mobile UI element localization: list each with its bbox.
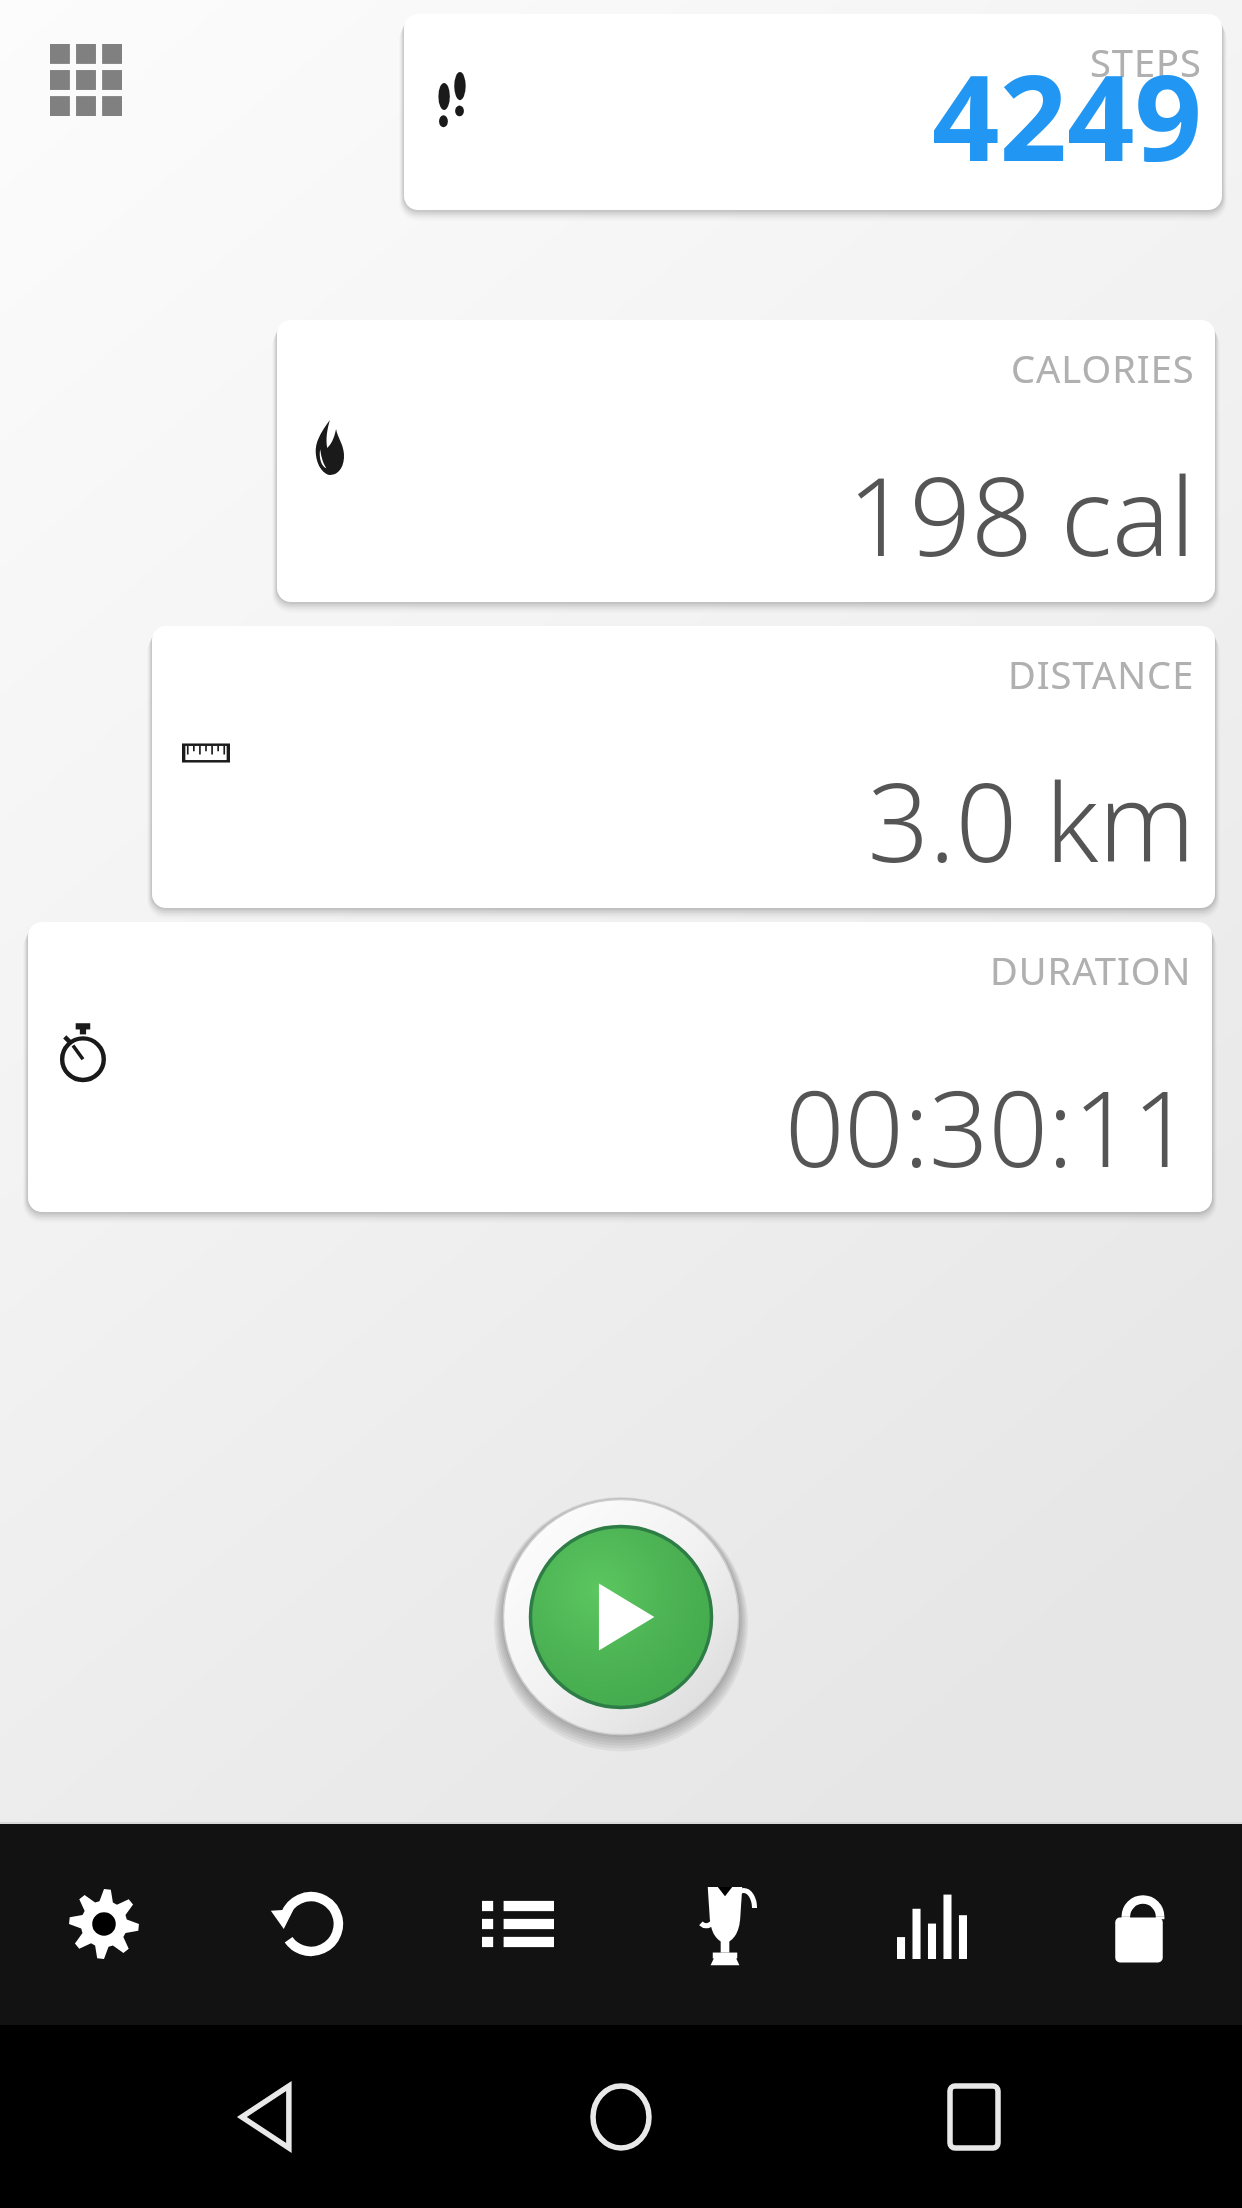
button[interactable]: CALORIES (277, 320, 1215, 602)
button[interactable]: DISTANCE (152, 626, 1215, 908)
button[interactable]: Reset (207, 1822, 414, 2025)
button[interactable]: Menu (40, 34, 132, 126)
button[interactable]: DURATION (28, 922, 1212, 1212)
staticText: 198 cal (847, 441, 1195, 588)
button[interactable]: Back (183, 2025, 353, 2208)
button[interactable]: Home (536, 2025, 706, 2208)
staticText: DISTANCE (1008, 648, 1195, 700)
staticText: DURATION (990, 944, 1192, 996)
staticText: STEPS (1090, 36, 1202, 88)
button[interactable]: STEPS (404, 14, 1222, 210)
button[interactable]: Start (498, 1494, 744, 1740)
button[interactable]: Statistics (828, 1822, 1035, 2025)
staticText: 4249 (932, 35, 1202, 196)
button[interactable]: Recent apps (889, 2025, 1059, 2208)
button[interactable]: Settings (0, 1822, 207, 2025)
button[interactable]: Achievements (621, 1822, 828, 2025)
staticText: 00:30:11 (784, 1056, 1192, 1198)
staticText: 3.0 km (867, 747, 1195, 894)
button[interactable]: Lock (1035, 1822, 1242, 2025)
staticText: CALORIES (1011, 342, 1195, 394)
button[interactable]: History list (414, 1822, 621, 2025)
